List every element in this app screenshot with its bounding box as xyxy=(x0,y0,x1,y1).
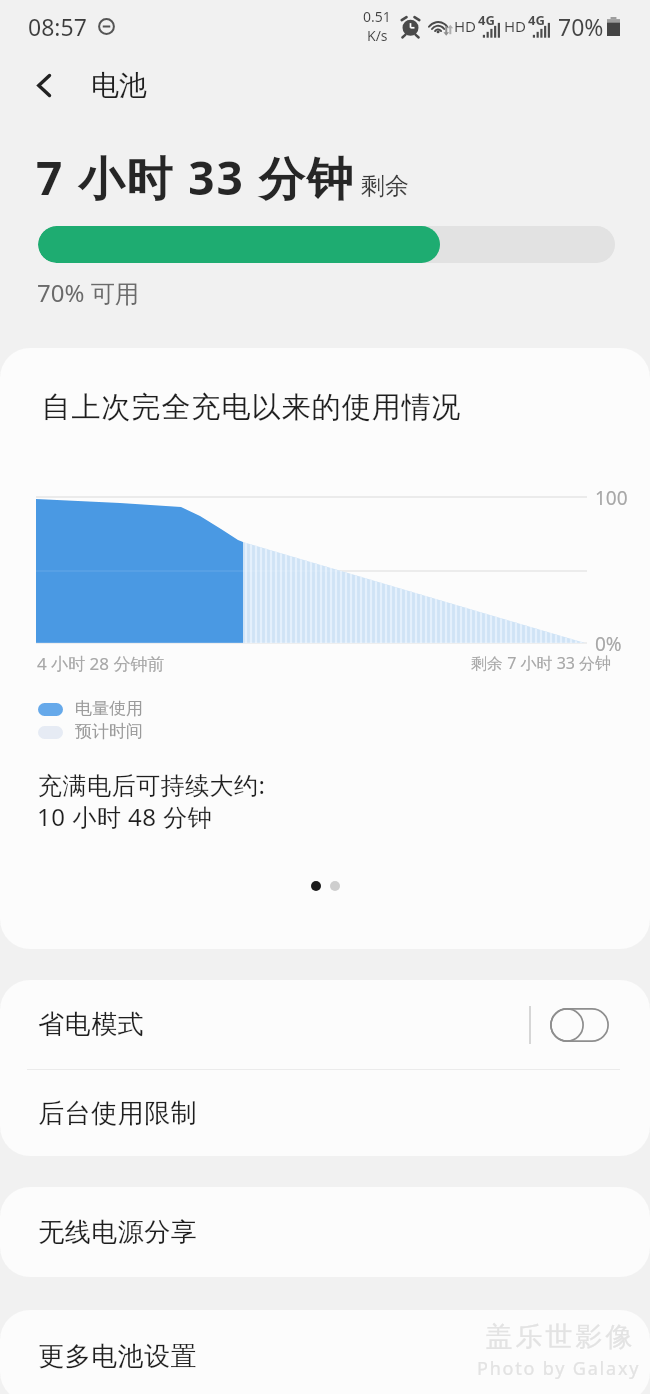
staticText: 70% 可用 xyxy=(37,276,139,309)
button[interactable]: 省电模式 xyxy=(0,980,650,1069)
staticText: 充满电后可持续大约: xyxy=(38,768,266,801)
staticText: 后台使用限制 xyxy=(38,1097,197,1130)
staticText: Photo by Galaxy xyxy=(477,1356,641,1381)
staticText: 10 小时 48 分钟 xyxy=(37,800,213,833)
staticText: 剩余 7 小时 33 分钟 xyxy=(471,652,612,674)
button[interactable]: 更多电池设置 xyxy=(0,1310,650,1394)
staticText: 剩余 xyxy=(361,171,409,201)
staticText: 4G xyxy=(478,11,495,29)
staticText: 4 小时 28 分钟前 xyxy=(37,652,165,675)
staticText: 省电模式 xyxy=(38,1008,144,1041)
staticText: HD xyxy=(454,16,477,36)
staticText: 70% xyxy=(558,11,604,42)
staticText: K/s xyxy=(367,26,388,45)
staticText: 预计时间 xyxy=(75,721,143,742)
staticText: 7 小时 33 分钟 xyxy=(36,146,355,209)
staticText: 盖乐世影像 xyxy=(484,1320,634,1354)
staticText: HD xyxy=(504,16,527,36)
staticText: 电池 xyxy=(91,68,147,103)
button[interactable]: 无线电源分享 xyxy=(0,1187,650,1277)
button[interactable]: 后台使用限制 xyxy=(0,1070,650,1156)
staticText: 0% xyxy=(595,631,622,657)
staticText: 更多电池设置 xyxy=(38,1340,197,1373)
staticText: 无线电源分享 xyxy=(38,1216,197,1249)
staticText: 自上次完全充电以来的使用情况 xyxy=(41,389,461,426)
staticText: 电量使用 xyxy=(75,698,143,719)
staticText: 08:57 xyxy=(28,11,87,42)
button[interactable]: 省电模式 switch xyxy=(550,1008,609,1042)
staticText: 4G xyxy=(528,11,545,29)
staticText: 0.51 xyxy=(363,7,391,26)
button[interactable]: Back xyxy=(21,62,67,108)
staticText: 100 xyxy=(595,485,628,511)
